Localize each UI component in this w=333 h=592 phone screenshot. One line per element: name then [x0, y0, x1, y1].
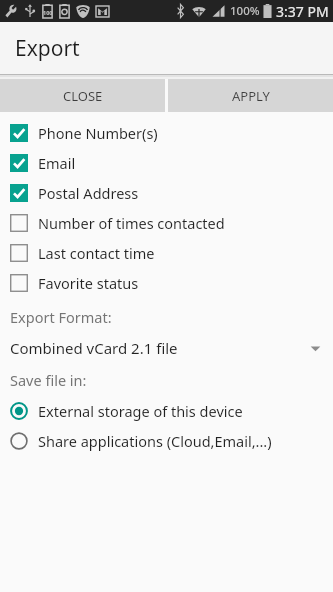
staticText: Postal Address	[38, 183, 139, 203]
staticText: Export Format:	[10, 307, 112, 327]
staticText: Export	[15, 34, 80, 63]
staticText: Favorite status	[38, 273, 139, 293]
staticText: Phone Number(s)	[38, 123, 158, 143]
staticText: Email	[38, 153, 76, 173]
button[interactable]: Email	[0, 148, 333, 178]
button[interactable]: Postal Address	[0, 178, 333, 208]
staticText: External storage of this device	[38, 401, 243, 421]
staticText: CLOSE	[63, 87, 103, 105]
staticText: Share applications (Cloud,Email,...)	[38, 431, 272, 451]
staticText: APPLY	[232, 87, 270, 105]
staticText: Number of times contacted	[38, 213, 225, 233]
staticText: Save file in:	[10, 370, 87, 390]
button[interactable]: Phone Number(s)	[0, 118, 333, 148]
button[interactable]: External storage of this device	[0, 396, 333, 426]
button[interactable]: APPLY	[168, 79, 333, 112]
staticText: Last contact time	[38, 243, 155, 263]
button[interactable]: Number of times contacted	[0, 208, 333, 238]
button[interactable]: Export format selector	[0, 334, 333, 362]
button[interactable]: CLOSE	[0, 79, 165, 112]
button[interactable]: Favorite status	[0, 268, 333, 298]
staticText: 3:37 PM	[276, 2, 329, 21]
staticText: 100%	[230, 3, 260, 19]
staticText: Combined vCard 2.1 file	[10, 338, 178, 358]
staticText: 100	[43, 9, 53, 16]
button[interactable]: Last contact time	[0, 238, 333, 268]
button[interactable]: Export	[0, 22, 333, 74]
button[interactable]: Share applications (Cloud,Email,...)	[0, 426, 333, 456]
